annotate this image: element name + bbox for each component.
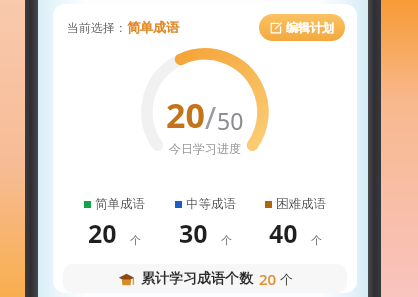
button[interactable]: 简单成语 xyxy=(80,196,149,250)
staticText: 累计学习成语个数 xyxy=(141,270,253,288)
staticText: 50 xyxy=(217,105,244,136)
staticText: 简单成语 xyxy=(127,19,179,35)
staticText: 20 xyxy=(259,269,277,289)
staticText: 个 xyxy=(311,233,322,247)
button[interactable]: 中等成语 xyxy=(171,196,240,250)
staticText: 简单成语 xyxy=(95,196,145,212)
staticText: 个 xyxy=(221,233,232,247)
staticText: 个 xyxy=(280,271,293,287)
staticText: 30 xyxy=(179,216,221,250)
button[interactable]: 累计学习成语个数 xyxy=(63,264,347,293)
staticText: 困难成语 xyxy=(276,196,326,212)
staticText: 40 xyxy=(269,216,311,250)
button[interactable]: 困难成语 xyxy=(261,196,330,250)
staticText: 编辑计划 xyxy=(286,20,334,35)
staticText: 20 xyxy=(88,216,130,250)
staticText: 20 xyxy=(166,92,205,138)
staticText: 今日学习进度 xyxy=(169,141,241,156)
staticText: / xyxy=(205,97,217,138)
staticText: 中等成语 xyxy=(186,196,236,212)
staticText: 当前选择： xyxy=(67,20,127,35)
staticText: 个 xyxy=(130,233,141,247)
button[interactable]: 编辑计划 xyxy=(259,14,345,41)
